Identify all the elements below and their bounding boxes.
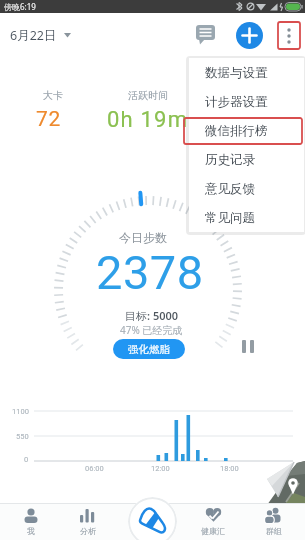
- staticText: 群组: [266, 526, 282, 536]
- button[interactable]: 6月22日: [10, 13, 76, 57]
- button[interactable]: 我: [6, 503, 56, 540]
- staticText: 微信排行榜: [205, 123, 268, 139]
- staticText: 大卡: [43, 89, 63, 102]
- button[interactable]: 计步器设置: [189, 87, 304, 116]
- staticText: 目标: 5000: [125, 308, 179, 322]
- staticText: 傍晚6:19: [4, 1, 36, 12]
- staticText: 2378: [96, 245, 204, 293]
- button[interactable]: 强化燃脂: [113, 339, 185, 359]
- staticText: 健康汇: [201, 526, 225, 536]
- staticText: 18:00: [220, 464, 239, 473]
- staticText: 今日步数: [119, 230, 167, 244]
- staticText: 数据与设置: [205, 65, 268, 81]
- staticText: 活跃时间: [128, 89, 168, 102]
- button[interactable]: [193, 21, 221, 49]
- button[interactable]: 历史记录: [189, 145, 304, 174]
- staticText: 12:00: [151, 464, 170, 473]
- button[interactable]: [238, 336, 260, 358]
- button[interactable]: [279, 22, 299, 49]
- button[interactable]: 群组: [249, 503, 299, 540]
- staticText: 分析: [80, 526, 96, 536]
- staticText: 历史记录: [205, 152, 255, 168]
- staticText: 我: [27, 526, 35, 536]
- button[interactable]: 意见反馈: [189, 174, 304, 203]
- staticText: 6月22日: [10, 27, 57, 44]
- staticText: 72: [36, 107, 62, 131]
- staticText: 0: [24, 455, 29, 464]
- button[interactable]: [236, 22, 263, 49]
- button[interactable]: 微信排行榜: [189, 116, 304, 145]
- staticText: 550: [16, 432, 29, 441]
- staticText: 常见问题: [205, 210, 255, 226]
- button[interactable]: [258, 452, 305, 505]
- staticText: 强化燃脂: [128, 343, 170, 356]
- button[interactable]: 数据与设置: [189, 58, 304, 87]
- staticText: 47% 已经完成: [120, 323, 183, 337]
- button[interactable]: 分析: [66, 503, 116, 540]
- staticText: 1100: [12, 407, 29, 416]
- staticText: 0h 19m: [107, 107, 189, 131]
- button[interactable]: 常见问题: [189, 203, 304, 232]
- staticText: 计步器设置: [205, 94, 268, 110]
- button[interactable]: [128, 497, 177, 540]
- staticText: 06:00: [85, 464, 104, 473]
- staticText: 意见反馈: [205, 181, 255, 197]
- button[interactable]: 健康汇: [188, 503, 238, 540]
